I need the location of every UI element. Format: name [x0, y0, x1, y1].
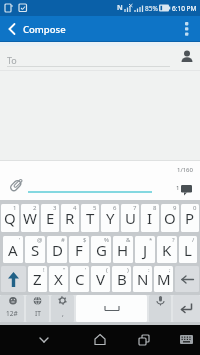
- button[interactable]: I: [141, 204, 159, 232]
- button[interactable]: F: [69, 236, 89, 263]
- staticText: F: [75, 240, 83, 260]
- staticText: 12#: [6, 309, 18, 318]
- button[interactable]: N: [133, 266, 152, 292]
- staticText: &: [126, 236, 131, 244]
- staticText: X: [54, 269, 63, 289]
- staticText: T: [86, 208, 95, 228]
- button[interactable]: T: [81, 204, 99, 232]
- staticText: I: [147, 208, 153, 228]
- staticText: 1/160: [177, 166, 193, 174]
- button[interactable]: E: [41, 204, 59, 232]
- staticText: 0: [193, 204, 197, 212]
- staticText: A: [8, 240, 18, 260]
- button[interactable]: [173, 295, 200, 322]
- staticText: O: [164, 208, 176, 228]
- staticText: !: [43, 266, 45, 274]
- button[interactable]: Y: [101, 204, 119, 232]
- staticText: 6:10 PM: [172, 4, 197, 13]
- staticText: :: [148, 266, 150, 274]
- button[interactable]: [178, 50, 194, 70]
- staticText: 7: [133, 204, 137, 212]
- button[interactable]: [175, 266, 199, 292]
- staticText: Q: [4, 208, 16, 228]
- button[interactable]: [5, 176, 25, 196]
- staticText: IT: [35, 309, 41, 318]
- button[interactable]: P: [181, 204, 199, 232]
- button[interactable]: W: [21, 204, 39, 232]
- staticText: C: [75, 269, 85, 289]
- button[interactable]: R: [61, 204, 79, 232]
- button[interactable]: H: [113, 236, 133, 263]
- button[interactable]: X: [49, 266, 68, 292]
- staticText: ): [127, 266, 129, 274]
- staticText: M: [157, 269, 171, 289]
- staticText: /: [192, 236, 195, 244]
- staticText: P: [185, 208, 195, 228]
- button[interactable]: O: [161, 204, 179, 232]
- button[interactable]: [178, 19, 196, 39]
- staticText: 1: [176, 184, 180, 192]
- staticText: %: [104, 236, 109, 244]
- staticText: V: [96, 269, 106, 289]
- staticText: 1: [13, 204, 17, 212]
- staticText: *: [149, 236, 153, 244]
- button[interactable]: J: [135, 236, 155, 263]
- staticText: Y: [106, 208, 115, 228]
- staticText: N: [137, 269, 149, 289]
- staticText: B: [117, 269, 127, 289]
- button[interactable]: [90, 331, 110, 349]
- staticText: E: [46, 208, 55, 228]
- button[interactable]: [1, 266, 26, 292]
- staticText: 2: [33, 204, 37, 212]
- staticText: (: [106, 266, 108, 274]
- button[interactable]: [134, 331, 154, 349]
- staticText: ;: [169, 266, 171, 274]
- staticText: Compose: [23, 23, 66, 36]
- button[interactable]: G: [91, 236, 111, 263]
- button[interactable]: ,: [51, 295, 74, 322]
- staticText: H: [117, 240, 129, 260]
- button[interactable]: A: [3, 236, 23, 263]
- button[interactable]: L: [179, 236, 197, 263]
- staticText: D: [52, 240, 63, 260]
- button[interactable]: [149, 295, 171, 322]
- button[interactable]: Z: [28, 266, 47, 292]
- button[interactable]: [178, 332, 196, 348]
- button[interactable]: 1: [173, 183, 197, 197]
- staticText: 3: [53, 204, 57, 212]
- staticText: ': [85, 266, 87, 274]
- staticText: ,: [62, 309, 64, 318]
- button[interactable]: M: [154, 266, 173, 292]
- button[interactable]: IT: [26, 295, 49, 322]
- staticText: 9: [173, 204, 177, 212]
- button[interactable]: K: [157, 236, 177, 263]
- button[interactable]: V: [91, 266, 110, 292]
- staticText: 5: [93, 204, 97, 212]
- staticText: ?: [172, 236, 175, 244]
- button[interactable]: [76, 295, 147, 322]
- staticText: W: [23, 208, 37, 228]
- staticText: R: [65, 208, 75, 228]
- button[interactable]: [4, 20, 22, 38]
- staticText: Z: [33, 269, 42, 289]
- staticText: #: [61, 236, 65, 244]
- staticText: $: [83, 236, 87, 244]
- staticText: N: [117, 3, 123, 13]
- staticText: S: [31, 240, 40, 260]
- button[interactable]: B: [112, 266, 131, 292]
- button[interactable]: C: [70, 266, 89, 292]
- staticText: K: [162, 240, 172, 260]
- staticText: U: [125, 208, 136, 228]
- button[interactable]: 12#: [0, 295, 24, 322]
- button[interactable]: Q: [1, 204, 19, 232]
- button[interactable]: D: [47, 236, 67, 263]
- staticText: ": [63, 266, 66, 274]
- staticText: ': [19, 236, 21, 244]
- button[interactable]: U: [121, 204, 139, 232]
- staticText: @: [37, 236, 43, 244]
- button[interactable]: S: [25, 236, 45, 263]
- staticText: 85%: [145, 4, 158, 13]
- staticText: 4: [73, 204, 77, 212]
- button[interactable]: [34, 331, 54, 349]
- staticText: 6: [113, 204, 117, 212]
